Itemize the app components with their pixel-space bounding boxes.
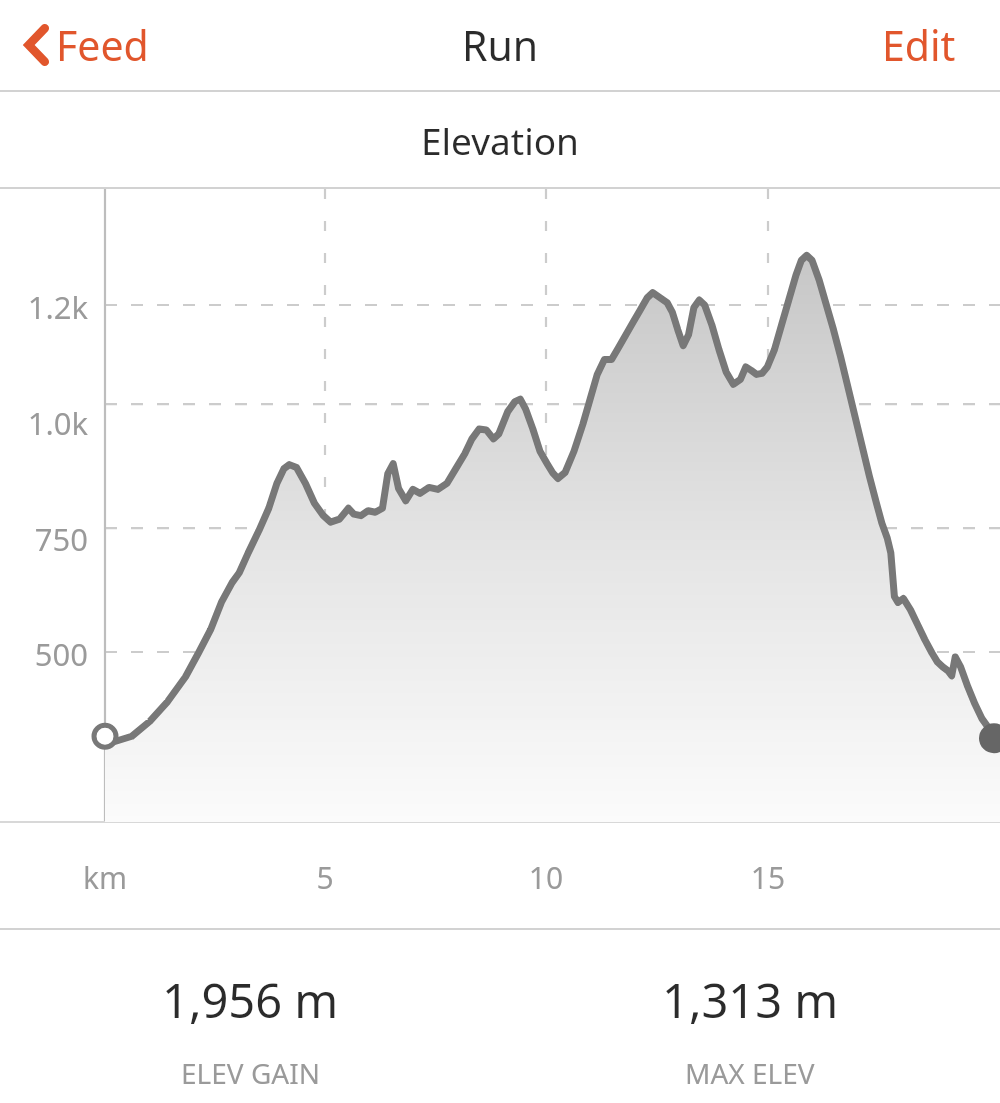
staticText: 1.0k bbox=[0, 402, 88, 444]
staticText: MAX ELEV bbox=[685, 1054, 815, 1092]
staticText: km bbox=[45, 857, 165, 898]
staticText: 500 bbox=[0, 633, 88, 675]
button[interactable]: 1,313 m bbox=[500, 930, 1000, 1103]
staticText: 1,313 m bbox=[662, 968, 839, 1032]
staticText: Elevation bbox=[421, 115, 579, 165]
staticText: 5 bbox=[265, 857, 385, 898]
button[interactable]: Edit bbox=[874, 9, 964, 81]
staticText: Run bbox=[462, 17, 539, 73]
staticText: 750 bbox=[0, 518, 88, 560]
button[interactable]: 1,956 m bbox=[0, 930, 500, 1103]
staticText: 1,956 m bbox=[162, 968, 339, 1032]
button[interactable]: Feed bbox=[18, 9, 155, 81]
staticText: ELEV GAIN bbox=[181, 1054, 320, 1092]
staticText: Edit bbox=[882, 17, 956, 73]
staticText: 15 bbox=[708, 857, 828, 898]
staticText: 10 bbox=[486, 857, 606, 898]
staticText: 1.2k bbox=[0, 286, 88, 328]
staticText: Feed bbox=[56, 17, 149, 73]
